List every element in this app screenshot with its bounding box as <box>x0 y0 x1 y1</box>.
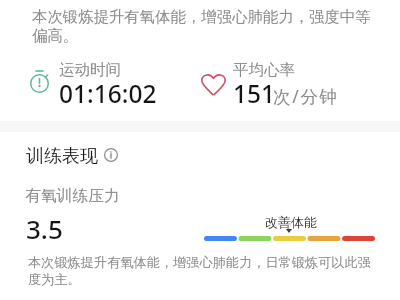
staticText: 训练表现 <box>26 145 98 168</box>
staticText: 偏高。 <box>32 26 79 45</box>
staticText: 151 <box>233 77 276 110</box>
staticText: 本次锻炼提升有氧体能，增强心肺能力，日常锻炼可以此强 <box>28 254 371 271</box>
staticText: 运动时间 <box>59 60 121 80</box>
staticText: 有氧训练压力 <box>25 186 120 206</box>
other: 信息 <box>104 148 118 162</box>
staticText: 度为主。 <box>28 271 81 288</box>
staticText: 改善体能 <box>265 214 317 230</box>
staticText: 平均心率 <box>233 60 295 80</box>
staticText: 次/分钟 <box>273 84 339 108</box>
staticText: 3.5 <box>26 211 63 246</box>
button[interactable]: 训练表现 <box>26 145 118 168</box>
staticText: 01:16:02 <box>59 77 157 110</box>
staticText: 本次锻炼提升有氧体能，增强心肺能力，强度中等 <box>32 7 371 26</box>
